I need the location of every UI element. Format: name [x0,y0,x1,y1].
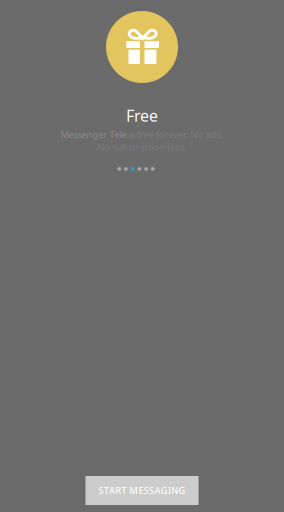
staticText: is free forever. No ads. [126,128,223,141]
staticText: No subscription fees. [97,141,187,153]
staticText: Free [126,105,158,126]
button[interactable]: START MESSAGING [85,476,198,505]
staticText: Messenger Tele [60,128,126,141]
staticText: START MESSAGING [98,484,186,497]
